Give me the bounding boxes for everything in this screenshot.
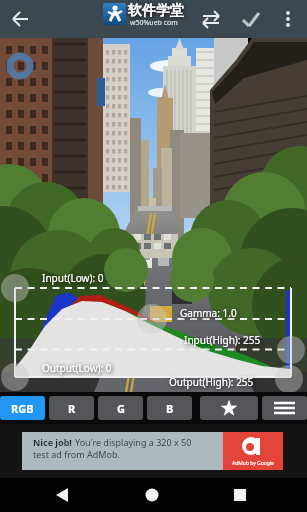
staticText: Output(High): 255 bbox=[169, 375, 254, 389]
button[interactable] bbox=[192, 0, 230, 38]
button[interactable]: G bbox=[98, 396, 143, 420]
staticText: You're displaying a 320 x 50 bbox=[75, 436, 192, 448]
button[interactable] bbox=[271, 0, 307, 38]
button[interactable]: RGB bbox=[0, 396, 45, 420]
staticText: B bbox=[166, 401, 174, 416]
staticText: w50%ueb com bbox=[130, 18, 178, 28]
staticText: Nice job! bbox=[33, 436, 75, 448]
button[interactable] bbox=[132, 478, 172, 512]
button[interactable] bbox=[220, 478, 260, 512]
staticText: Output(Low): 0 bbox=[42, 361, 112, 375]
staticText: RGB bbox=[11, 401, 34, 416]
staticText: G bbox=[117, 401, 125, 416]
staticText: Input(Low): 0 bbox=[42, 271, 104, 285]
button[interactable]: R bbox=[49, 396, 94, 420]
staticText: Gamma: 1.0 bbox=[180, 306, 237, 320]
staticText: AdMob by Google bbox=[232, 460, 274, 467]
button[interactable] bbox=[0, 0, 40, 38]
staticText: Input(High): 255 bbox=[184, 333, 261, 347]
button[interactable] bbox=[233, 0, 269, 38]
button[interactable]: B bbox=[147, 396, 192, 420]
staticText: R bbox=[68, 401, 76, 416]
button[interactable] bbox=[42, 478, 82, 512]
button[interactable] bbox=[200, 396, 258, 420]
staticText: test ad from AdMob. bbox=[33, 448, 120, 460]
staticText: 软件学堂 bbox=[128, 2, 184, 20]
button[interactable]: Nice job! bbox=[22, 432, 283, 470]
button[interactable] bbox=[103, 3, 126, 25]
button[interactable] bbox=[262, 396, 307, 420]
